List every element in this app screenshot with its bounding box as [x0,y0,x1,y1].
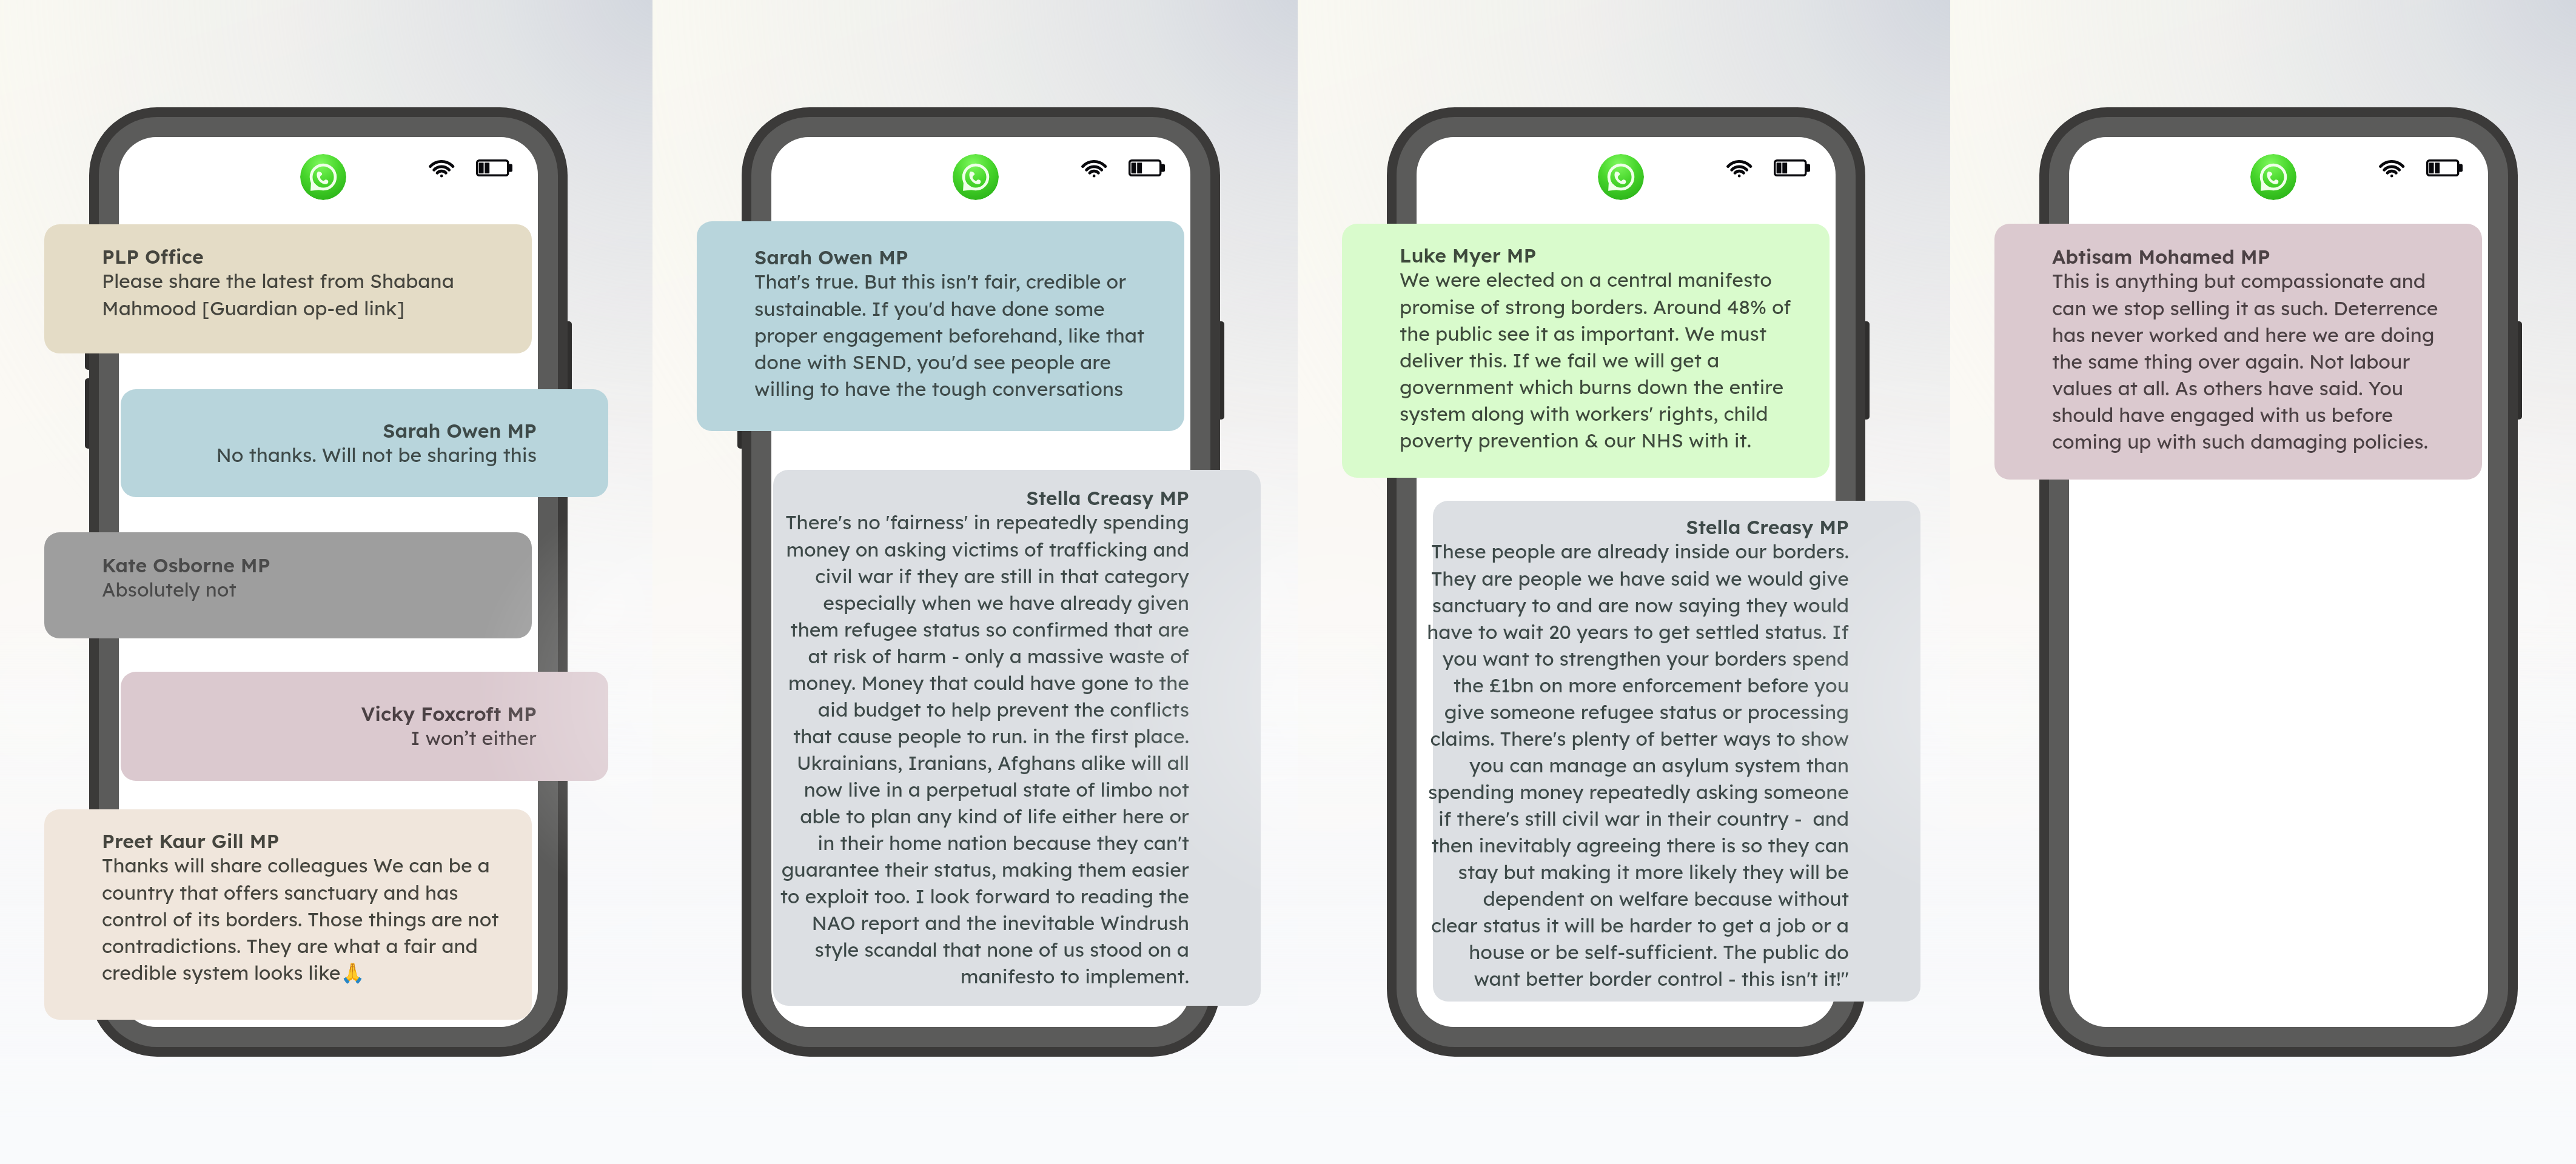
button[interactable]: WhatsApp [300,154,346,200]
other: Wi-Fi signal [428,158,455,179]
staticText: That's true. But this isn't fair, credib… [754,269,1179,401]
staticText: Sarah Owen MP [754,245,1179,269]
button[interactable]: WhatsApp [953,154,999,200]
button[interactable]: Abtisam Mohamed MP [1994,224,2482,480]
staticText: Please share the latest from Shabana Mah… [102,269,526,320]
button[interactable]: Sarah Owen MP [121,389,608,497]
staticText: Vicky Foxcroft MP [112,701,537,726]
staticText: No thanks. Will not be sharing this [112,443,537,467]
other: Battery level [1129,159,1165,176]
other: Wi-Fi signal [1080,158,1108,179]
button[interactable]: Stella Creasy MP [773,470,1261,1006]
button[interactable]: Vicky Foxcroft MP [121,672,608,781]
other: Battery level [2426,159,2463,176]
button[interactable]: WhatsApp [2250,154,2296,200]
other: Battery level [476,159,512,176]
button[interactable]: WhatsApp [1598,154,1644,200]
staticText: Kate Osborne MP [102,553,526,577]
button[interactable]: Stella Creasy MP [1433,501,1920,1002]
staticText: Absolutely not [102,577,526,601]
other: Battery level [1774,159,1810,176]
staticText: Thanks will share colleagues We can be a… [102,853,526,985]
button[interactable]: Preet Kaur Gill MP [44,809,532,1020]
staticText: Preet Kaur Gill MP [102,829,526,853]
button[interactable]: Luke Myer MP [1342,224,1830,478]
staticText: This is anything but compassionate and c… [2052,269,2477,453]
other: Wi-Fi signal [2378,158,2406,179]
button[interactable]: PLP Office [44,224,532,353]
staticText: PLP Office [102,244,526,269]
staticText: Abtisam Mohamed MP [2052,244,2477,269]
staticText: We were elected on a central manifesto p… [1400,267,1824,452]
staticText: There's no 'fairness' in repeatedly spen… [765,510,1189,988]
staticText: Sarah Owen MP [112,418,537,443]
staticText: These people are already inside our bord… [1424,539,1849,991]
button[interactable]: Sarah Owen MP [697,221,1184,431]
other: Wi-Fi signal [1725,158,1753,179]
button[interactable]: Kate Osborne MP [44,532,532,638]
staticText: Stella Creasy MP [1424,515,1849,539]
staticText: I won’t either [112,726,537,750]
staticText: Stella Creasy MP [765,486,1189,510]
staticText: Luke Myer MP [1400,243,1824,267]
